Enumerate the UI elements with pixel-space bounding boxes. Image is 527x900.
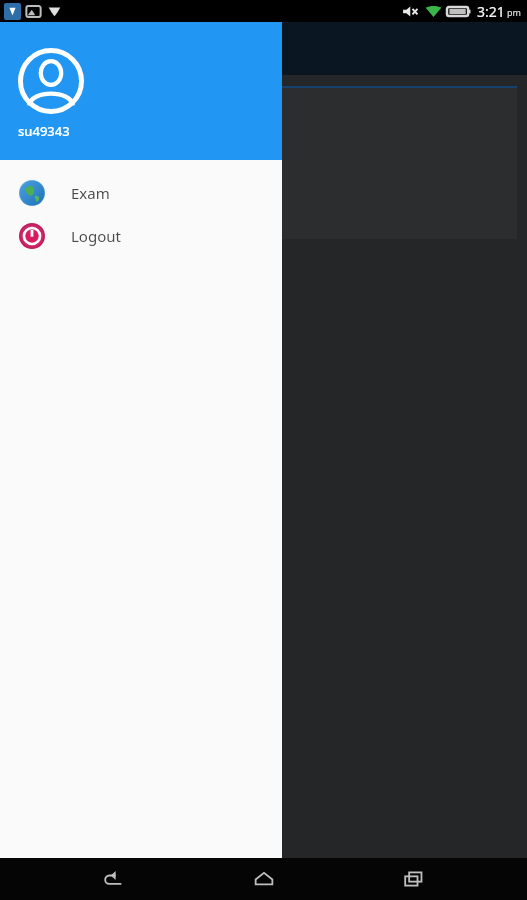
staticText: pm xyxy=(507,6,521,18)
button[interactable]: Logout xyxy=(0,215,282,257)
staticText: 4455345987 xyxy=(18,158,110,180)
staticText: 3:21 xyxy=(477,2,505,21)
button[interactable]: Back xyxy=(90,858,136,900)
staticText: Logout xyxy=(71,226,121,246)
button[interactable]: Exam xyxy=(0,172,282,214)
staticText: Sushmita Halder xyxy=(24,102,157,125)
button[interactable] xyxy=(14,196,74,229)
staticText: Exam xyxy=(71,183,110,203)
staticText: su49343 xyxy=(18,122,70,140)
button[interactable]: Home xyxy=(241,858,287,900)
button[interactable]: Recent apps xyxy=(391,858,437,900)
